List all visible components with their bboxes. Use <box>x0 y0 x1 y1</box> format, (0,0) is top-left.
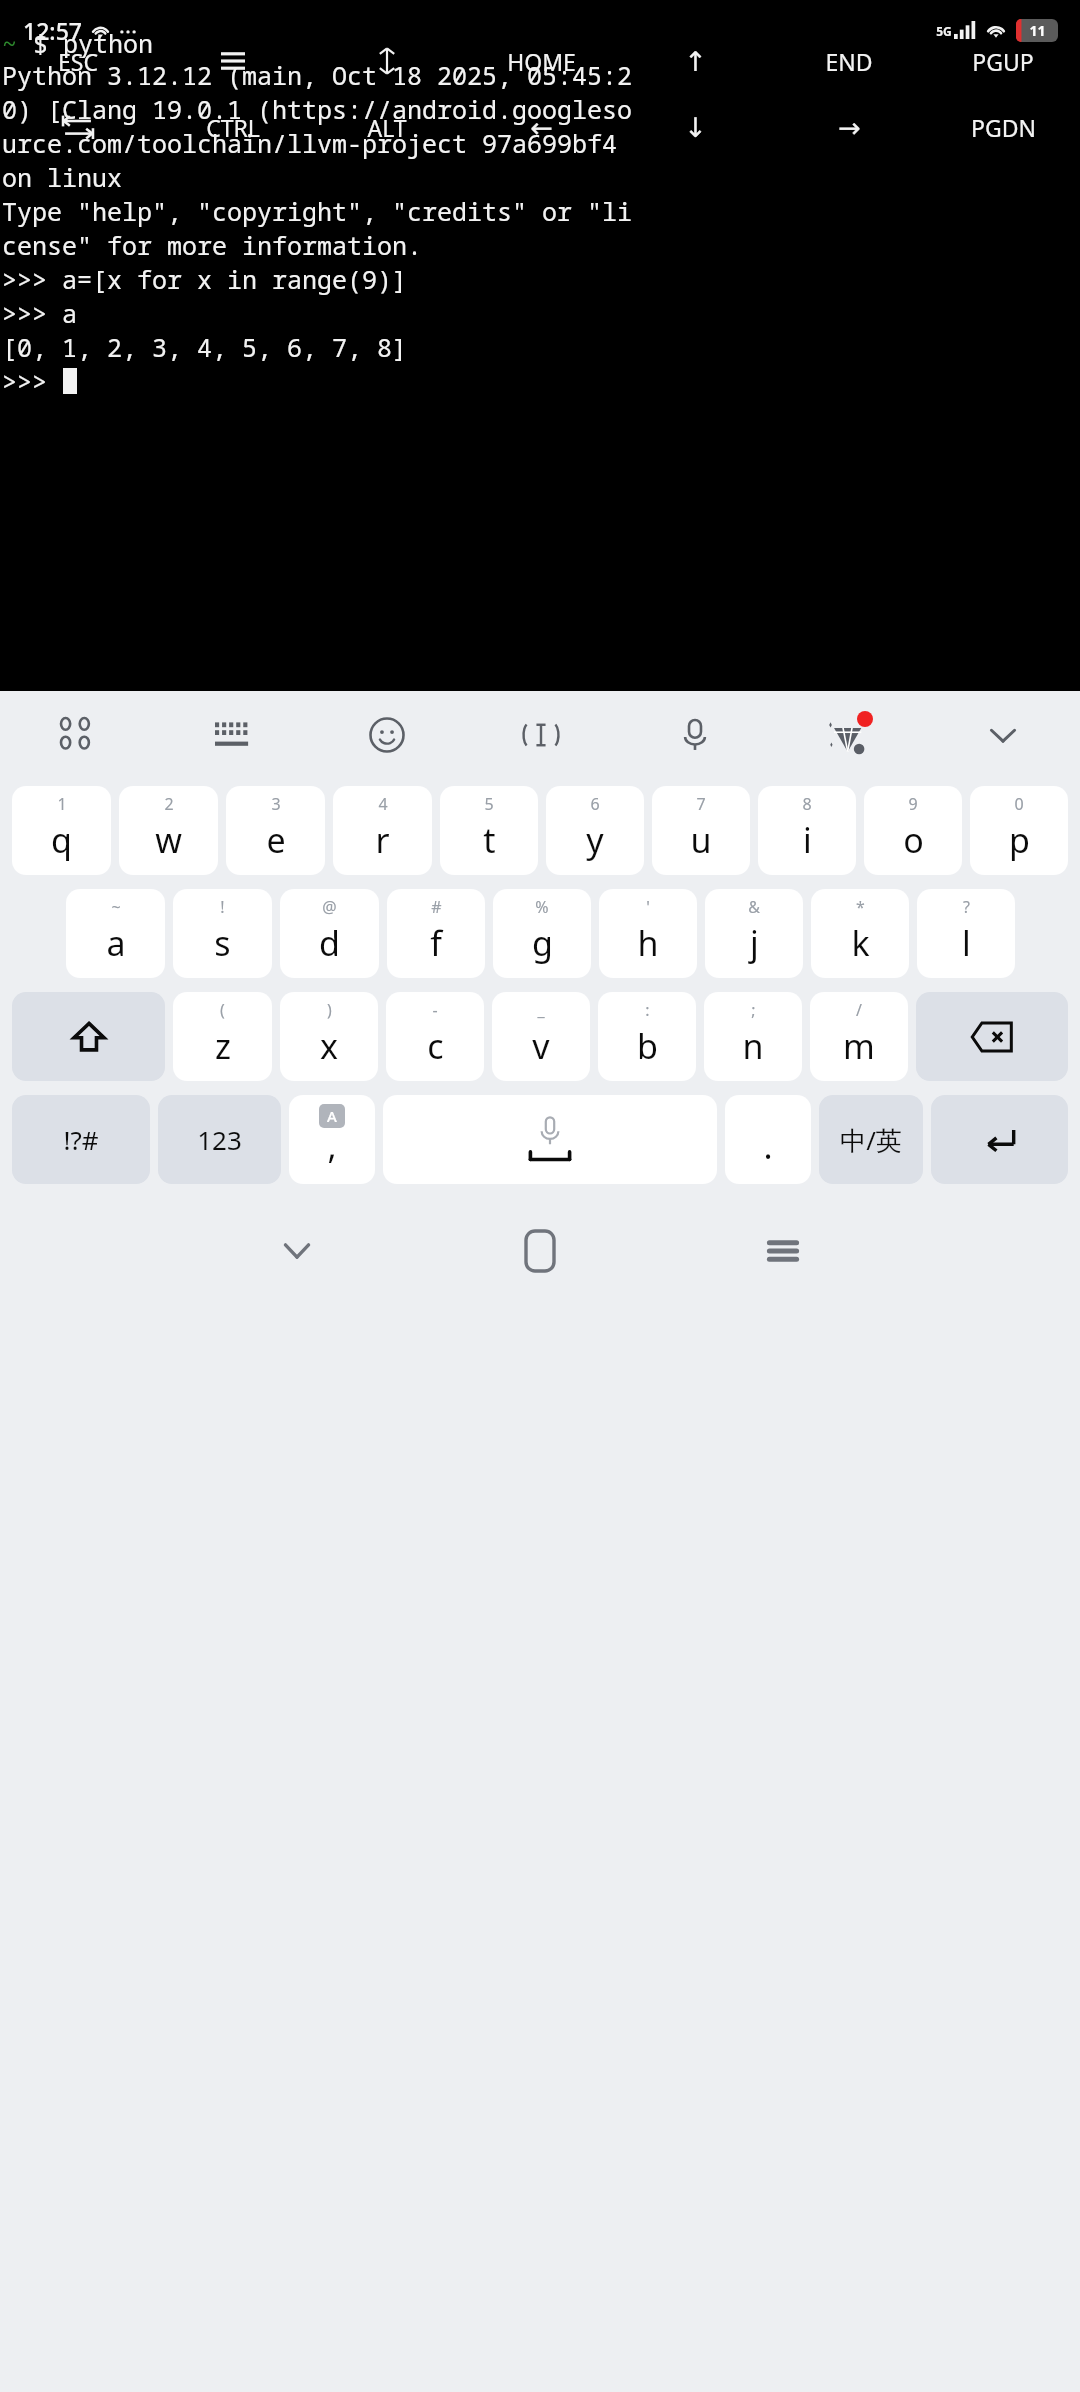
button[interactable]: Voice input <box>618 691 772 779</box>
staticText: t <box>483 817 496 863</box>
staticText: on linux <box>2 160 123 194</box>
button[interactable]: ← <box>464 105 618 149</box>
staticText: v <box>532 1023 550 1069</box>
button[interactable]: p <box>970 786 1068 875</box>
button[interactable]: Emoji <box>310 691 464 779</box>
button[interactable]: CTRL <box>155 105 310 149</box>
staticText: 3 <box>271 793 281 815</box>
button[interactable]: c <box>386 992 484 1081</box>
staticText: w <box>155 817 182 863</box>
staticText: 8 <box>802 793 812 815</box>
button[interactable]: e <box>226 786 325 875</box>
button[interactable]: x <box>280 992 378 1081</box>
staticText: & <box>748 896 760 918</box>
staticText: * <box>856 896 865 918</box>
staticText: z <box>215 1023 231 1069</box>
staticText: j <box>750 920 759 966</box>
button[interactable]: f <box>387 889 485 978</box>
staticText: u <box>690 817 712 863</box>
staticText: r <box>375 817 390 863</box>
staticText: a <box>106 920 126 966</box>
button[interactable]: o <box>864 786 962 875</box>
staticText: e <box>266 817 286 863</box>
button[interactable]: Themes <box>772 691 926 779</box>
button[interactable]: !?# <box>12 1095 150 1184</box>
staticText: f <box>430 920 442 966</box>
button[interactable]: h <box>599 889 697 978</box>
staticText: 6 <box>590 793 600 815</box>
staticText: k <box>851 920 870 966</box>
button[interactable]: Recents <box>728 1205 838 1297</box>
button[interactable]: d <box>280 889 379 978</box>
staticText: c <box>427 1023 444 1069</box>
staticText: [0, 1, 2, 3, 4, 5, 6, 7, 8] <box>2 330 408 364</box>
button[interactable]: r <box>333 786 432 875</box>
staticText: !?# <box>63 1122 99 1157</box>
button[interactable]: y <box>546 786 644 875</box>
staticText: ) <box>327 999 332 1021</box>
staticText: i <box>803 817 812 863</box>
button[interactable]: l <box>917 889 1015 978</box>
button[interactable]: u <box>652 786 750 875</box>
button[interactable]: z <box>173 992 272 1081</box>
staticText: _ <box>537 999 545 1021</box>
button[interactable]: ↑ <box>618 39 772 83</box>
staticText: Type "help", "copyright", "credits" or "… <box>2 194 633 228</box>
button[interactable]: END <box>772 39 926 83</box>
button[interactable]: ESC <box>0 39 155 83</box>
staticText: p <box>1009 817 1030 863</box>
button[interactable]: a <box>66 889 165 978</box>
button[interactable]: q <box>12 786 111 875</box>
button[interactable]: t <box>440 786 538 875</box>
button[interactable]: MENU <box>155 39 310 83</box>
staticText: 2 <box>164 793 174 815</box>
button[interactable]: i <box>758 786 856 875</box>
staticText: >>> a <box>2 296 78 330</box>
button[interactable]: 123 <box>158 1095 281 1184</box>
button[interactable]: PGUP <box>926 39 1080 83</box>
button[interactable]: g <box>493 889 591 978</box>
button[interactable]: Hide keyboard <box>926 691 1080 779</box>
button[interactable]: ↓ <box>618 105 772 149</box>
button[interactable]: shift <box>12 992 165 1081</box>
button[interactable]: 中/英 <box>819 1095 923 1184</box>
button[interactable]: TAB <box>0 105 155 149</box>
button[interactable]: k <box>811 889 909 978</box>
button[interactable]: w <box>119 786 218 875</box>
button[interactable]: enter <box>931 1095 1068 1184</box>
button[interactable]: HOME <box>464 39 618 83</box>
button[interactable]: v <box>492 992 590 1081</box>
staticText: h <box>637 920 659 966</box>
button[interactable]: b <box>598 992 696 1081</box>
staticText: - <box>432 999 438 1021</box>
staticText: 4 <box>378 793 388 815</box>
staticText: ~ <box>2 26 18 58</box>
button[interactable]: ALT <box>310 105 464 149</box>
button[interactable]: s <box>173 889 272 978</box>
staticText: A <box>327 1106 337 1126</box>
button[interactable]: Back <box>242 1205 352 1297</box>
button[interactable]: . <box>725 1095 811 1184</box>
button[interactable]: m <box>810 992 908 1081</box>
staticText: @ <box>322 896 337 918</box>
button[interactable]: Apps <box>0 691 155 779</box>
staticText: ~ <box>111 896 121 918</box>
button[interactable]: back <box>916 992 1068 1081</box>
staticText: s <box>214 920 231 966</box>
staticText: 9 <box>908 793 918 815</box>
button[interactable]: Keyboard layout <box>155 691 310 779</box>
button[interactable]: n <box>704 992 802 1081</box>
button[interactable]: → <box>772 105 926 149</box>
button[interactable]: space <box>383 1095 717 1184</box>
staticText: # <box>431 896 442 918</box>
staticText: d <box>319 920 340 966</box>
button[interactable]: j <box>705 889 803 978</box>
button[interactable]: , <box>289 1095 375 1184</box>
button[interactable]: Text edit <box>464 691 618 779</box>
staticText: 1 <box>57 793 67 815</box>
staticText: . <box>763 1123 773 1169</box>
button[interactable]: Home <box>485 1205 595 1297</box>
button[interactable]: UPDOWN <box>310 39 464 83</box>
button[interactable]: PGDN <box>926 105 1080 149</box>
staticText: cense" for more information. <box>2 228 423 262</box>
